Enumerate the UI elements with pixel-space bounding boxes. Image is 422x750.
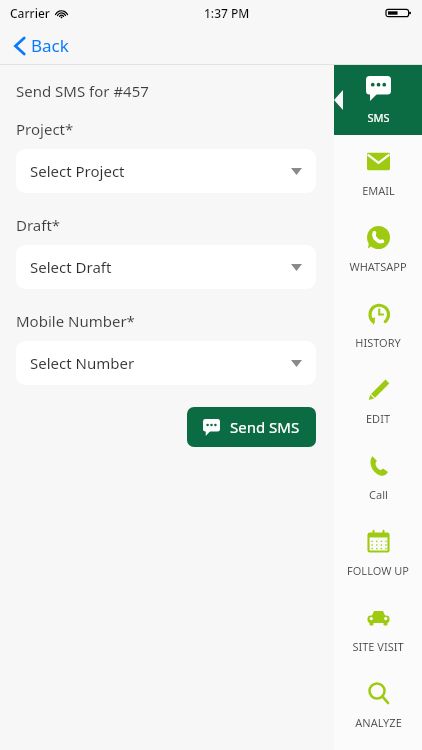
button[interactable]: FOLLOW UP	[334, 515, 422, 591]
button[interactable]: ANALYZE	[334, 667, 422, 743]
staticText: Select Number	[30, 353, 135, 373]
button[interactable]: Send SMS	[187, 407, 316, 447]
button[interactable]: Back	[10, 30, 73, 61]
staticText: Send SMS	[230, 417, 300, 437]
staticText: 1:37 PM	[204, 5, 250, 21]
button[interactable]: Select Number	[16, 341, 316, 385]
staticText: Select Draft	[30, 257, 112, 277]
staticText: Mobile Number*	[16, 311, 135, 331]
staticText: Send SMS for #457	[16, 81, 149, 101]
button[interactable]: HISTORY	[334, 287, 422, 363]
staticText: Project*	[16, 119, 74, 139]
staticText: Draft*	[16, 215, 61, 235]
button[interactable]: EMAIL	[334, 135, 422, 211]
staticText: Back	[31, 34, 69, 57]
staticText: WHATSAPP	[349, 259, 407, 274]
button[interactable]: EDIT	[334, 363, 422, 439]
button[interactable]: Call	[334, 439, 422, 515]
button[interactable]: Select Draft	[16, 245, 316, 289]
staticText: SMS	[367, 110, 390, 125]
staticText: Select Project	[30, 161, 125, 181]
staticText: EMAIL	[362, 183, 395, 198]
staticText: HISTORY	[355, 335, 401, 350]
staticText: Call	[369, 487, 388, 502]
staticText: SITE VISIT	[352, 639, 404, 654]
button[interactable]: SITE VISIT	[334, 591, 422, 667]
staticText: FOLLOW UP	[347, 563, 409, 578]
staticText: Carrier	[10, 5, 50, 21]
button[interactable]: Select Project	[16, 149, 316, 193]
staticText: EDIT	[366, 411, 390, 426]
button[interactable]: SMS	[334, 65, 422, 135]
button[interactable]: WHATSAPP	[334, 211, 422, 287]
staticText: ANALYZE	[355, 715, 402, 730]
